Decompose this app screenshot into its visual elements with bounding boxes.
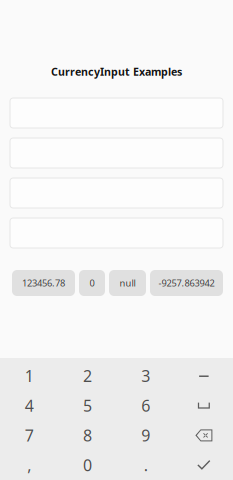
staticText: 3: [141, 365, 150, 386]
button[interactable]: 1: [0, 361, 58, 391]
button[interactable]: 0: [79, 270, 105, 296]
button[interactable]: 9: [116, 420, 175, 450]
button[interactable]: 3: [116, 361, 175, 391]
button[interactable]: Currency input field: [10, 218, 223, 248]
staticText: 4: [25, 395, 34, 416]
staticText: ,: [27, 454, 31, 476]
staticText: 0: [89, 277, 94, 289]
button[interactable]: 4: [0, 391, 58, 421]
button[interactable]: 7: [0, 420, 58, 450]
button[interactable]: 5: [58, 391, 116, 421]
staticText: 123456.78: [22, 277, 65, 289]
button[interactable]: 8: [58, 420, 116, 450]
button[interactable]: Currency input field: [10, 138, 223, 168]
staticText: 5: [83, 395, 92, 416]
staticText: 7: [25, 425, 34, 446]
staticText: 0: [83, 454, 92, 476]
staticText: CurrencyInput Examples: [51, 64, 182, 79]
button[interactable]: 0: [58, 450, 116, 480]
staticText: null: [119, 277, 135, 289]
button[interactable]: Space: [175, 391, 233, 421]
staticText: 8: [83, 425, 92, 446]
button[interactable]: Minus: [175, 361, 233, 391]
button[interactable]: ,: [0, 450, 58, 480]
staticText: 9: [141, 425, 150, 446]
button[interactable]: Backspace: [175, 420, 233, 450]
button[interactable]: 2: [58, 361, 116, 391]
button[interactable]: Currency input field: [10, 178, 223, 208]
staticText: -9257.863942: [158, 277, 214, 289]
staticText: 2: [83, 365, 92, 386]
button[interactable]: 123456.78: [12, 270, 75, 296]
staticText: 6: [141, 395, 150, 416]
button[interactable]: Currency input field: [10, 98, 223, 128]
button[interactable]: -9257.863942: [150, 270, 223, 296]
button[interactable]: Done: [175, 450, 233, 480]
staticText: .: [144, 454, 148, 476]
button[interactable]: 6: [116, 391, 175, 421]
button[interactable]: null: [109, 270, 146, 296]
button[interactable]: .: [116, 450, 175, 480]
staticText: 1: [25, 365, 34, 386]
